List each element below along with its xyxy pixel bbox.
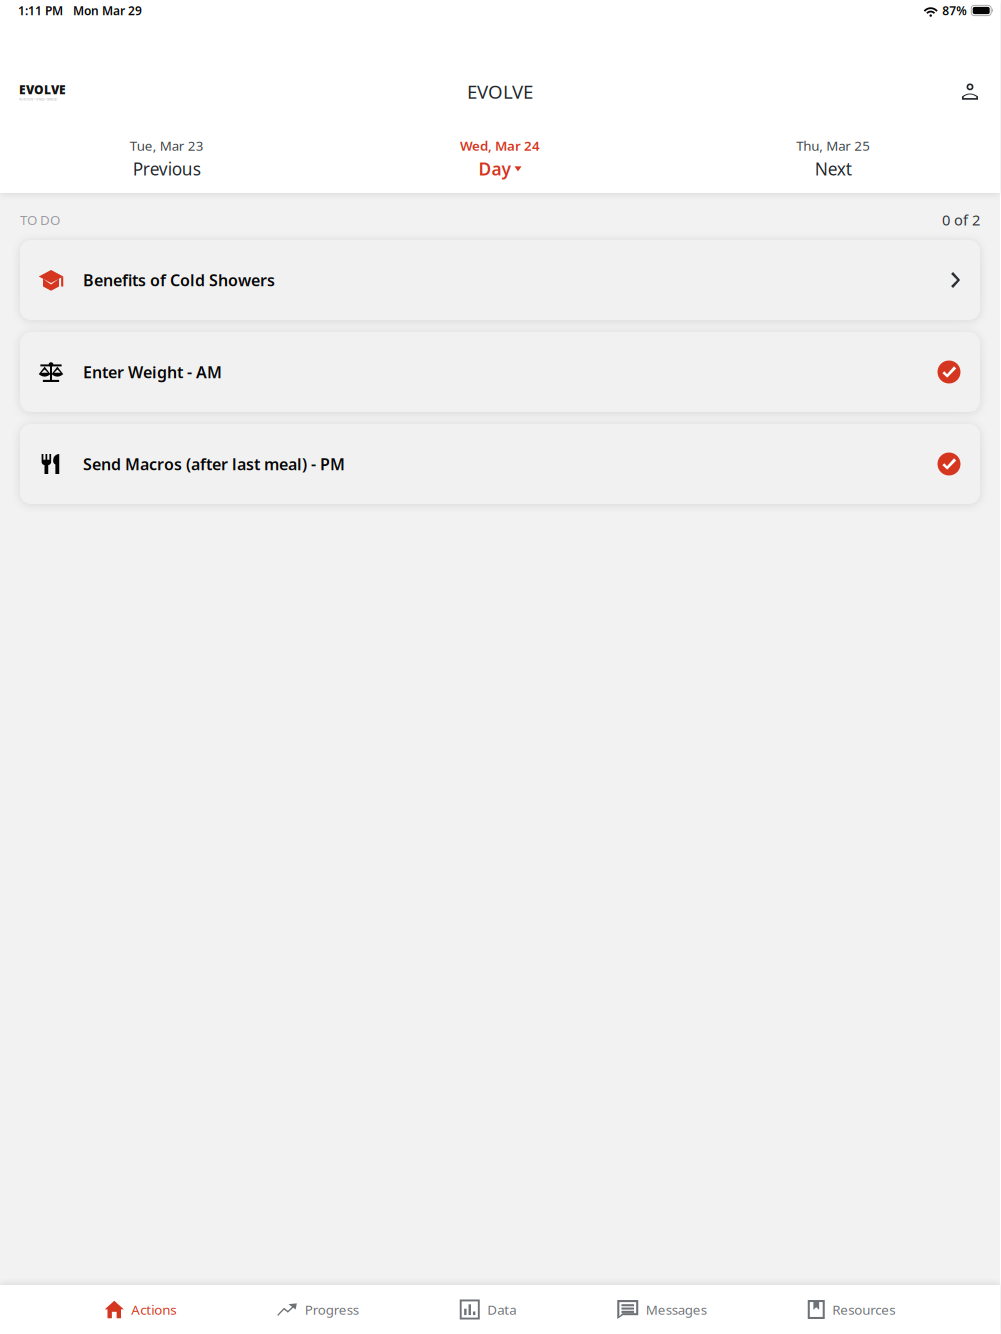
button[interactable]: Messages xyxy=(611,1285,713,1333)
staticText: Tue, Mar 23 xyxy=(130,137,204,154)
staticText: TO DO xyxy=(20,211,60,229)
staticText: Resources xyxy=(832,1301,895,1318)
staticText: Previous xyxy=(133,157,201,180)
staticText: Thu, Mar 25 xyxy=(796,137,870,154)
button[interactable]: Tue, Mar 23 xyxy=(0,124,333,193)
staticText: Day xyxy=(478,157,510,180)
button[interactable]: Data xyxy=(454,1285,522,1333)
button[interactable]: Progress xyxy=(271,1285,365,1333)
staticText: EVOLVE xyxy=(19,82,66,98)
button[interactable]: Send Macros (after last meal) - PM xyxy=(20,424,980,504)
staticText: Actions xyxy=(131,1301,176,1318)
staticText: Wed, Mar 24 xyxy=(460,137,540,154)
button[interactable]: Resources xyxy=(802,1285,901,1333)
staticText: Progress xyxy=(305,1301,359,1318)
staticText: Messages xyxy=(646,1301,707,1318)
button[interactable]: Account xyxy=(962,83,978,100)
staticText: Mon Mar 29 xyxy=(73,2,142,18)
button[interactable]: Actions xyxy=(99,1285,182,1333)
staticText: Enter Weight - AM xyxy=(83,361,222,383)
staticText: 0 of 2 xyxy=(942,210,980,229)
staticText: Data xyxy=(487,1301,516,1318)
button[interactable]: Wed, Mar 24 xyxy=(333,124,667,193)
staticText: NUTRITION • FITNESS • MINDSET xyxy=(19,98,57,101)
staticText: Send Macros (after last meal) - PM xyxy=(83,453,345,475)
staticText: 1:11 PM xyxy=(18,2,63,18)
staticText: EVOLVE xyxy=(467,79,533,104)
staticText: 87% xyxy=(942,2,967,18)
staticText: Benefits of Cold Showers xyxy=(83,269,275,291)
button[interactable]: Enter Weight - AM xyxy=(20,332,980,412)
button[interactable]: Thu, Mar 25 xyxy=(667,124,1000,193)
button[interactable]: Benefits of Cold Showers xyxy=(20,240,980,320)
staticText: Next xyxy=(815,157,852,180)
